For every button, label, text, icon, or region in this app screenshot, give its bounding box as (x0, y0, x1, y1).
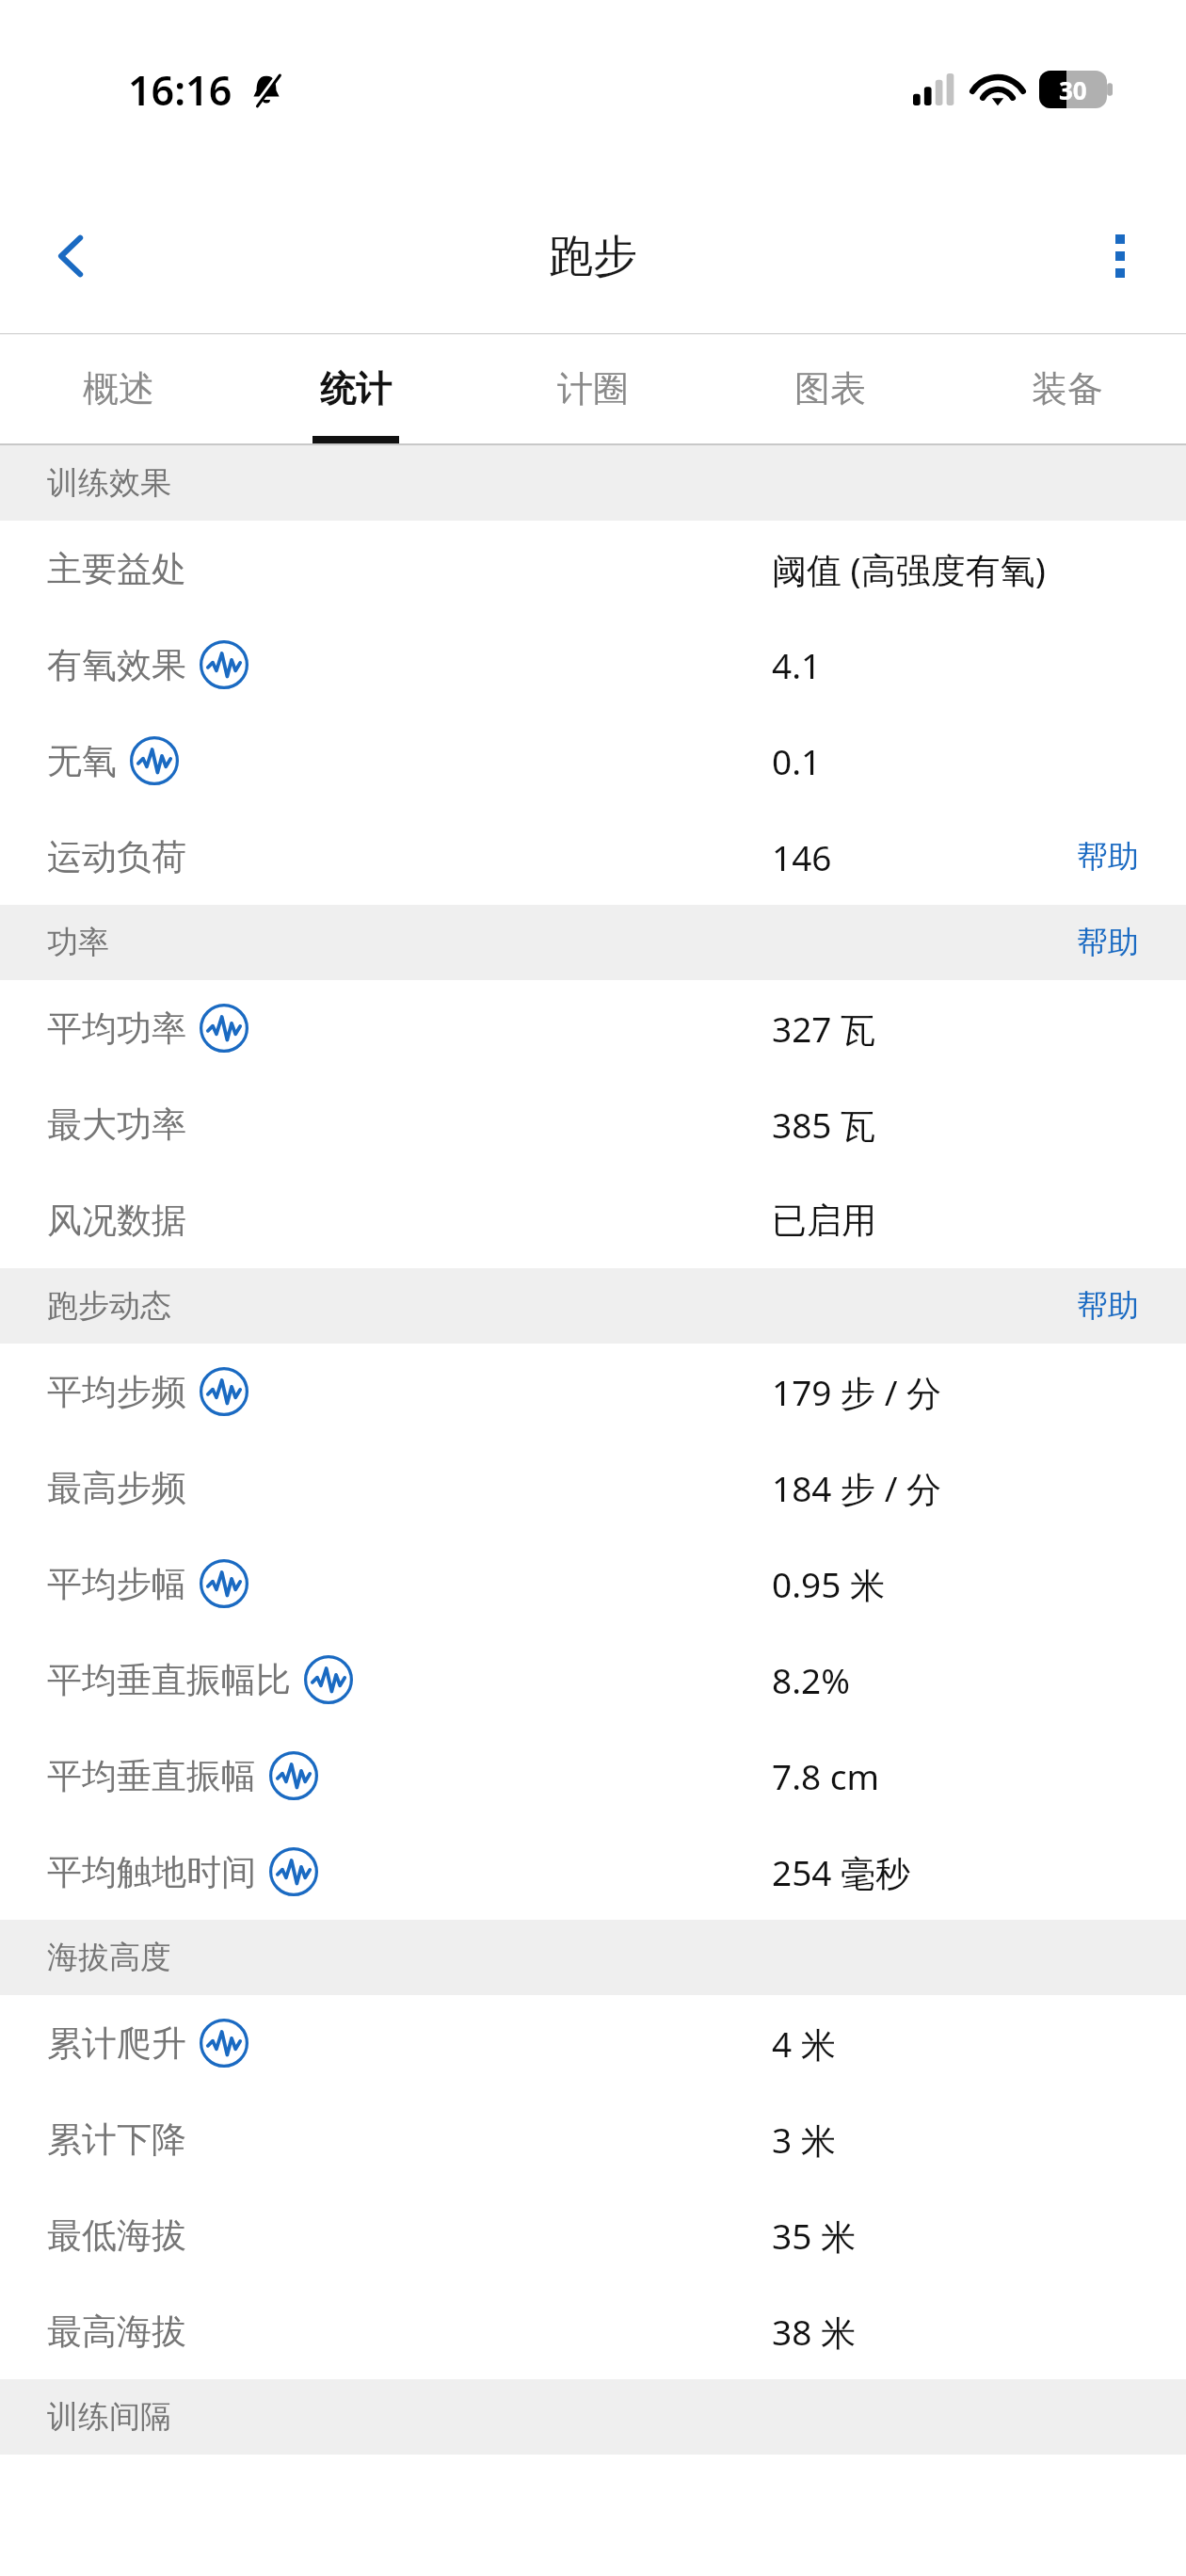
button[interactable]: 有氧效果 (0, 617, 1186, 713)
button[interactable]: 平均垂直振幅比 (0, 1632, 1186, 1728)
staticText: 327 瓦 (772, 1005, 876, 1053)
button[interactable]: 最大功率 (0, 1076, 1186, 1172)
staticText: 最高步频 (47, 1466, 186, 1510)
staticText: 平均垂直振幅 (47, 1754, 256, 1798)
staticText: 4.1 (772, 641, 822, 688)
staticText: 8.2% (772, 1656, 850, 1703)
staticText: 主要益处 (47, 547, 186, 591)
staticText: 平均步频 (47, 1370, 186, 1414)
staticText: 4 米 (772, 2020, 836, 2068)
staticText: 累计下降 (47, 2117, 186, 2162)
staticText: 7.8 cm (772, 1752, 880, 1799)
button[interactable]: 计圈 (474, 334, 712, 443)
staticText: 概述 (83, 366, 154, 411)
staticText: 累计爬升 (47, 2021, 186, 2066)
staticText: 阈值 (高强度有氧) (772, 545, 1046, 593)
staticText: 训练间隔 (47, 2397, 171, 2437)
staticText: 最低海拔 (47, 2214, 186, 2258)
button[interactable]: 累计下降 (0, 2091, 1186, 2187)
staticText: 35 米 (772, 2212, 856, 2260)
button[interactable]: 平均步频 (0, 1344, 1186, 1440)
button[interactable]: 主要益处 (0, 521, 1186, 617)
staticText: 最大功率 (47, 1103, 186, 1147)
button[interactable]: More options (1075, 211, 1165, 301)
staticText: 跑步动态 (47, 1286, 171, 1326)
button[interactable]: 图表 (712, 334, 949, 443)
staticText: 38 米 (772, 2308, 856, 2356)
staticText: 146 (772, 833, 832, 880)
staticText: 0.1 (772, 737, 822, 784)
staticText: 计圈 (557, 366, 629, 411)
button[interactable]: 帮助 (1030, 910, 1186, 975)
staticText: 帮助 (1077, 1286, 1139, 1326)
staticText: 运动负荷 (47, 835, 186, 879)
staticText: 最高海拔 (47, 2310, 186, 2354)
button[interactable]: 累计爬升 (0, 1995, 1186, 2091)
button[interactable]: 装备 (949, 334, 1186, 443)
staticText: 跑步 (549, 229, 637, 284)
staticText: 平均功率 (47, 1006, 186, 1051)
staticText: 功率 (47, 923, 109, 962)
staticText: 平均触地时间 (47, 1850, 256, 1894)
staticText: 帮助 (1077, 837, 1139, 877)
button[interactable]: 平均步幅 (0, 1536, 1186, 1632)
staticText: 30 (1059, 73, 1087, 106)
button[interactable]: 无氧 (0, 713, 1186, 809)
staticText: 平均步幅 (47, 1562, 186, 1606)
button[interactable]: 平均触地时间 (0, 1824, 1186, 1920)
button[interactable]: 风况数据 (0, 1172, 1186, 1268)
button[interactable]: 运动负荷 (0, 809, 1186, 905)
staticText: 179 步 / 分 (772, 1368, 942, 1416)
button[interactable]: 统计 (237, 334, 474, 443)
staticText: 有氧效果 (47, 643, 186, 687)
staticText: 0.95 米 (772, 1560, 886, 1608)
button[interactable]: Back (26, 211, 117, 301)
staticText: 风况数据 (47, 1199, 186, 1243)
staticText: 385 瓦 (772, 1101, 876, 1149)
button[interactable]: 概述 (0, 334, 237, 443)
button[interactable]: 最高步频 (0, 1440, 1186, 1536)
button[interactable]: 最高海拔 (0, 2283, 1186, 2379)
staticText: 3 米 (772, 2116, 836, 2164)
button[interactable]: 平均垂直振幅 (0, 1728, 1186, 1824)
button[interactable]: 帮助 (1030, 1273, 1186, 1339)
staticText: 装备 (1032, 366, 1103, 411)
staticText: 已启用 (772, 1199, 876, 1243)
staticText: 统计 (320, 366, 392, 411)
staticText: 帮助 (1077, 923, 1139, 962)
staticText: 16:16 (128, 62, 232, 118)
staticText: 无氧 (47, 739, 117, 783)
staticText: 184 步 / 分 (772, 1464, 942, 1512)
staticText: 训练效果 (47, 463, 171, 503)
staticText: 平均垂直振幅比 (47, 1658, 291, 1702)
staticText: 图表 (794, 366, 866, 411)
button[interactable]: 最低海拔 (0, 2187, 1186, 2283)
staticText: 254 毫秒 (772, 1848, 911, 1896)
staticText: 海拔高度 (47, 1938, 171, 1977)
button[interactable]: 帮助 (1030, 816, 1186, 897)
button[interactable]: 平均功率 (0, 980, 1186, 1076)
